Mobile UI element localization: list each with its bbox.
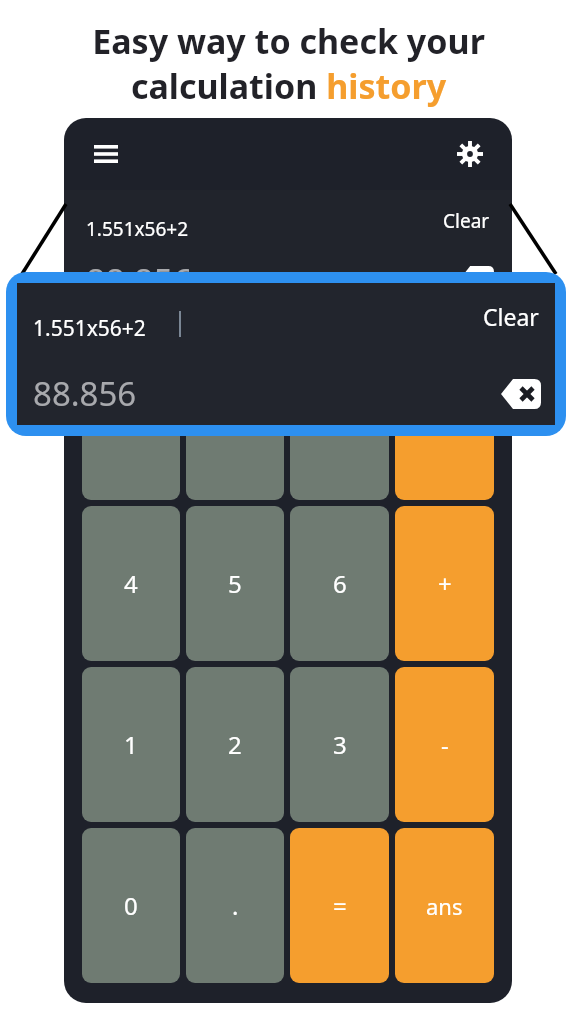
button[interactable]: 8 — [186, 345, 284, 500]
button[interactable]: 3 — [290, 667, 389, 822]
staticText: 8 — [228, 406, 242, 439]
button[interactable]: = — [290, 828, 389, 983]
staticText: 9 — [333, 406, 347, 439]
staticText: 6 — [333, 567, 347, 600]
button[interactable]: 6 — [290, 506, 389, 661]
button[interactable]: Settings — [446, 130, 494, 178]
staticText: 2 — [228, 728, 242, 761]
staticText: 1 — [124, 728, 138, 761]
button[interactable]: Backspace — [501, 379, 541, 409]
button[interactable]: 5 — [186, 506, 284, 661]
button[interactable]: 0 — [82, 828, 180, 983]
button[interactable]: Menu — [82, 130, 130, 178]
staticText: 1.551x56+2 — [33, 314, 146, 343]
button[interactable]: Clear — [443, 208, 490, 234]
staticText: = — [333, 889, 347, 922]
staticText: + — [438, 567, 452, 600]
staticText: 3 — [333, 728, 347, 761]
staticText: - — [441, 728, 449, 761]
staticText: 4 — [124, 567, 138, 600]
button[interactable]: 4 — [82, 506, 180, 661]
staticText: ans — [426, 891, 463, 921]
staticText: 88.856 — [86, 258, 193, 304]
button[interactable]: Backspace — [460, 266, 494, 292]
staticText: 7 — [124, 406, 138, 439]
staticText: x — [438, 406, 451, 439]
button[interactable]: x — [395, 345, 494, 500]
button[interactable]: Clear — [483, 301, 539, 332]
button[interactable]: 9 — [290, 345, 389, 500]
button[interactable]: 2 — [186, 667, 284, 822]
button[interactable]: + — [395, 506, 494, 661]
staticText: 88.856 — [33, 371, 137, 416]
button[interactable]: 1 — [82, 667, 180, 822]
staticText: . — [232, 889, 239, 922]
button[interactable]: - — [395, 667, 494, 822]
staticText: 0 — [124, 889, 138, 922]
staticText: 5 — [228, 567, 242, 600]
button[interactable]: 7 — [82, 345, 180, 500]
button[interactable]: ans — [395, 828, 494, 983]
staticText: Easy way to check your calculation histo… — [92, 18, 485, 108]
button[interactable]: . — [186, 828, 284, 983]
staticText: 1.551x56+2 — [86, 216, 189, 242]
